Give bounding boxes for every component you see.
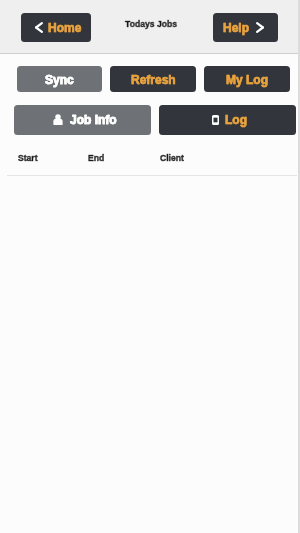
button[interactable]: Help [213,13,278,42]
staticText: Job Info [70,113,117,126]
staticText: Start [18,153,38,162]
staticText: Home [48,21,82,34]
staticText: Todays Jobs [125,19,177,29]
staticText: Client [160,153,184,162]
staticText: Client [160,153,184,162]
staticText: Refresh [131,73,176,86]
staticText: End [88,153,105,162]
staticText: My Log [226,73,268,86]
button[interactable]: Log [159,105,296,135]
staticText: Home [48,21,82,34]
button[interactable]: Home [21,13,91,42]
staticText: Sync [45,73,74,86]
button[interactable]: Sync [17,66,102,92]
staticText: Job Info [70,113,117,126]
button[interactable]: Refresh [110,66,196,92]
button[interactable]: Job Info [14,105,151,135]
staticText: Sync [45,73,74,86]
staticText: Log [225,113,247,126]
staticText: Start [18,153,38,162]
button[interactable]: My Log [204,66,290,92]
staticText: Todays Jobs [125,19,177,29]
staticText: Refresh [131,73,176,86]
staticText: Help [223,21,250,34]
staticText: My Log [226,73,268,86]
staticText: Help [223,21,250,34]
staticText: Log [225,113,247,126]
staticText: End [88,153,105,162]
